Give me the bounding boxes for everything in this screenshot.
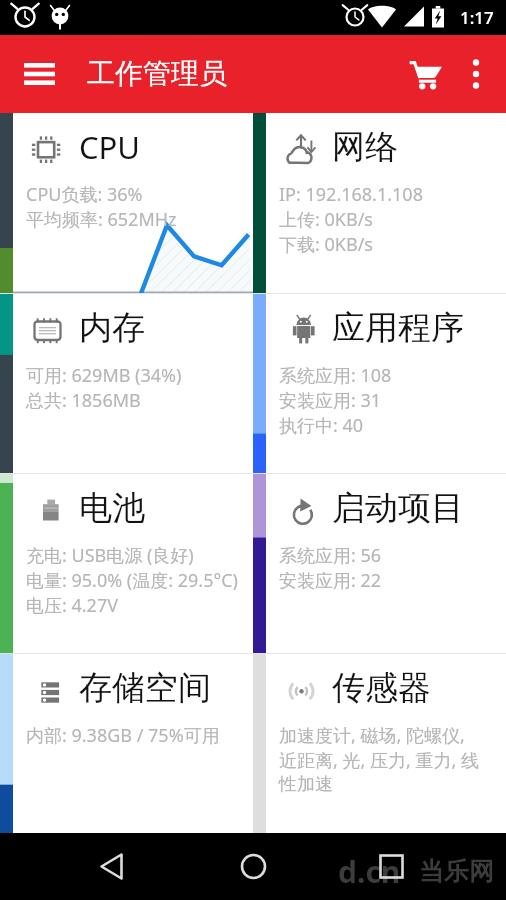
- button[interactable]: Back: [82, 836, 143, 897]
- staticText: 电压: 4.27V: [26, 593, 119, 618]
- staticText: 电池: [79, 487, 145, 529]
- button[interactable]: 启动项目: [253, 474, 506, 653]
- staticText: 充电: USB电源 (良好): [26, 543, 194, 568]
- button[interactable]: Home: [223, 836, 284, 897]
- staticText: 内存: [79, 307, 145, 349]
- button[interactable]: Recent apps: [361, 836, 422, 897]
- button[interactable]: 网络: [253, 113, 506, 293]
- staticText: 应用程序: [332, 307, 464, 349]
- staticText: 存储空间: [79, 667, 211, 709]
- staticText: 安装应用: 31: [279, 388, 382, 413]
- staticText: 平均频率: 652MHz: [26, 207, 177, 232]
- button[interactable]: 应用程序: [253, 294, 506, 473]
- staticText: 当乐网: [419, 856, 494, 887]
- staticText: IP: 192.168.1.108: [279, 182, 423, 207]
- button[interactable]: Open navigation drawer: [8, 35, 71, 113]
- staticText: 可用: 629MB (34%): [26, 363, 182, 388]
- staticText: d.cn: [338, 851, 401, 892]
- staticText: 传感器: [332, 667, 431, 709]
- staticText: 内部: 9.38GB / 75%可用: [26, 723, 220, 748]
- staticText: 上传: 0KB/s: [279, 207, 373, 232]
- staticText: 工作管理员: [87, 56, 227, 91]
- staticText: 执行中: 40: [279, 413, 364, 438]
- staticText: 性加速: [279, 773, 333, 796]
- button[interactable]: 电池: [0, 474, 253, 653]
- staticText: 总共: 1856MB: [26, 388, 141, 413]
- staticText: 电量: 95.0% (温度: 29.5°C): [26, 568, 238, 593]
- staticText: 近距离, 光, 压力, 重力, 线: [279, 748, 480, 773]
- staticText: 下载: 0KB/s: [279, 232, 373, 257]
- button[interactable]: More options: [453, 35, 499, 113]
- button[interactable]: 内存: [0, 294, 253, 473]
- staticText: 网络: [332, 126, 398, 168]
- staticText: CPU: [79, 126, 141, 168]
- staticText: 启动项目: [332, 487, 464, 529]
- staticText: CPU负载: 36%: [26, 182, 143, 207]
- staticText: 安装应用: 22: [279, 568, 382, 593]
- staticText: 系统应用: 108: [279, 363, 392, 388]
- staticText: 加速度计, 磁场, 陀螺仪,: [279, 723, 465, 748]
- button[interactable]: Shopping cart: [397, 35, 453, 113]
- button[interactable]: CPU: [0, 113, 253, 293]
- staticText: 系统应用: 56: [279, 543, 382, 568]
- button[interactable]: 传感器: [253, 654, 506, 833]
- staticText: 1:17: [460, 6, 494, 29]
- button[interactable]: 存储空间: [0, 654, 253, 833]
